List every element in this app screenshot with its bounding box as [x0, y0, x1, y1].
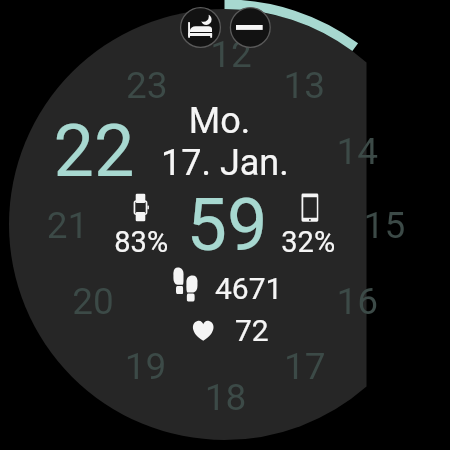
button[interactable]: Do not disturb: [230, 7, 271, 48]
button[interactable]: Bedtime mode: [180, 7, 221, 48]
